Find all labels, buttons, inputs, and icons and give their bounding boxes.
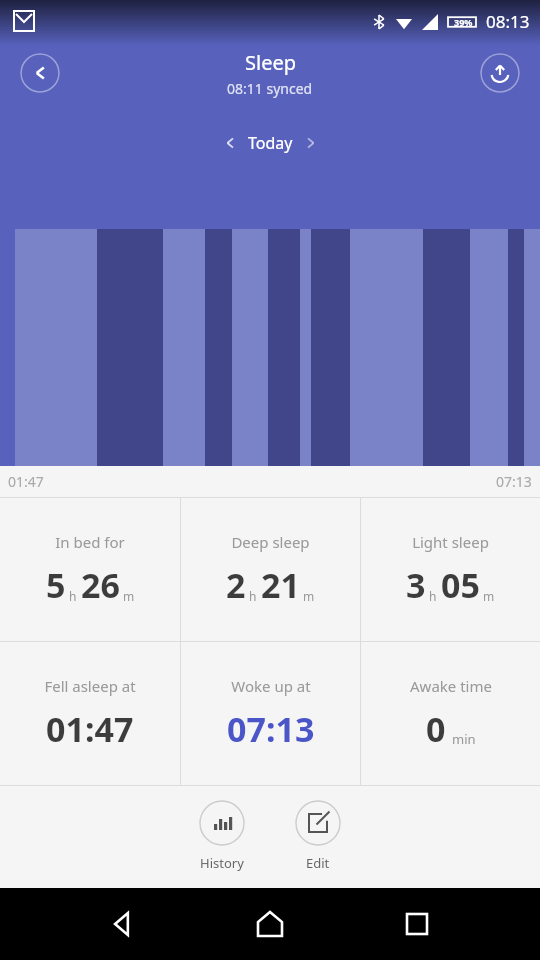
staticText: 21 — [261, 562, 300, 608]
staticText: 05 — [441, 562, 480, 608]
button[interactable]: Edit — [291, 796, 345, 876]
button[interactable]: Woke up at — [181, 642, 360, 785]
button[interactable]: Today — [214, 128, 327, 158]
staticText: 2 — [226, 562, 246, 608]
staticText: h — [249, 588, 257, 604]
staticText: Woke up at — [231, 676, 311, 696]
button[interactable]: In bed for — [0, 498, 180, 641]
staticText: Deep sleep — [231, 532, 310, 552]
button[interactable]: Home — [246, 900, 294, 948]
staticText: 39% — [454, 16, 473, 28]
button[interactable]: Back — [20, 53, 60, 93]
button[interactable]: History — [195, 796, 249, 876]
staticText: min — [452, 730, 476, 748]
staticText: m — [483, 588, 495, 604]
staticText: Edit — [306, 854, 330, 872]
staticText: 5 — [46, 562, 66, 608]
staticText: 3 — [406, 562, 426, 608]
staticText: 01:47 — [8, 472, 44, 491]
button[interactable]: Light sleep — [361, 498, 540, 641]
staticText: Sleep — [245, 49, 296, 76]
staticText: Fell asleep at — [44, 676, 136, 696]
button[interactable]: Back — [99, 900, 147, 948]
staticText: 07:13 — [496, 472, 532, 491]
button[interactable]: Fell asleep at — [0, 642, 180, 785]
staticText: h — [69, 588, 77, 604]
staticText: History — [200, 854, 244, 872]
staticText: Awake time — [410, 676, 492, 696]
staticText: 01:47 — [46, 706, 134, 752]
staticText: Today — [248, 132, 293, 154]
staticText: 0 — [426, 706, 446, 752]
staticText: m — [303, 588, 315, 604]
button[interactable]: Awake time — [361, 642, 540, 785]
staticText: 08:11 synced — [227, 79, 313, 98]
staticText: h — [429, 588, 437, 604]
button[interactable]: Share — [480, 53, 520, 93]
staticText: Light sleep — [412, 532, 489, 552]
staticText: m — [123, 588, 135, 604]
staticText: In bed for — [55, 532, 125, 552]
button[interactable]: Deep sleep — [181, 498, 360, 641]
staticText: 26 — [81, 562, 120, 608]
staticText: 07:13 — [227, 706, 315, 752]
button[interactable]: Recents — [393, 900, 441, 948]
staticText: 08:13 — [486, 10, 530, 33]
